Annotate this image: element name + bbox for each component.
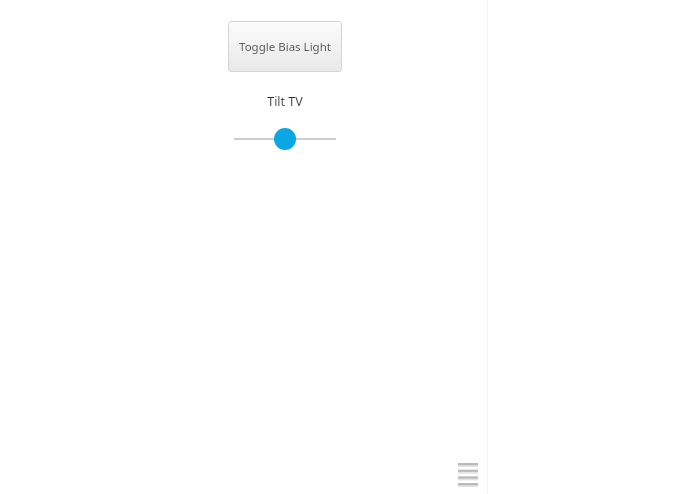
staticText: Toggle Bias Light [239,39,331,55]
staticText: Tilt TV [267,93,303,110]
button[interactable]: Tilt TV slider [226,122,344,156]
button[interactable]: Menu [452,456,484,488]
button[interactable]: Toggle Bias Light [228,21,342,72]
